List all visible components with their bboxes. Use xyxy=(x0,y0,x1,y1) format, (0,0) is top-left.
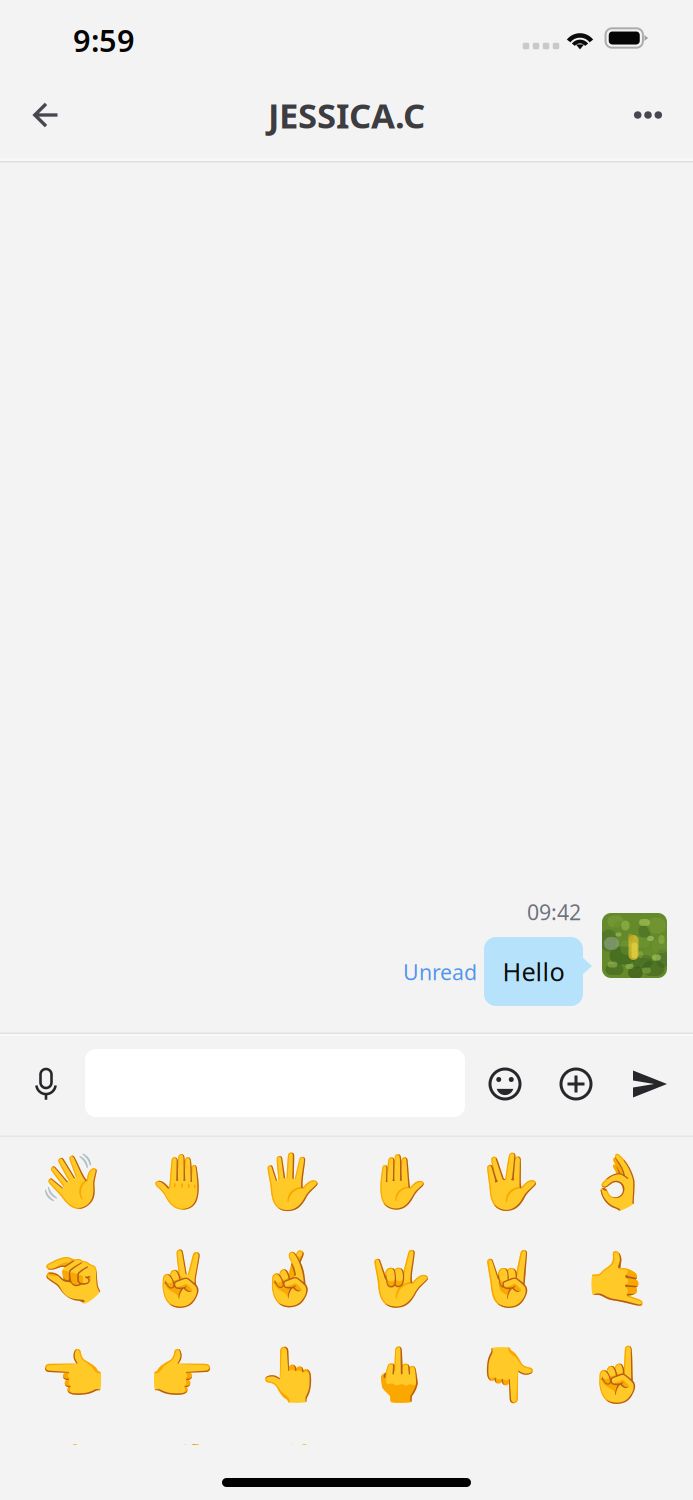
button[interactable]: Emoji xyxy=(17,1331,126,1419)
button[interactable]: Emoji xyxy=(345,1234,454,1322)
button[interactable]: Emoji xyxy=(126,1331,235,1419)
button[interactable]: Emoji xyxy=(454,1138,563,1226)
staticText: ✋ xyxy=(366,1151,432,1212)
button[interactable]: More options xyxy=(617,84,679,146)
staticText: 🤟 xyxy=(366,1248,432,1309)
button[interactable]: Voice message xyxy=(15,1050,77,1116)
staticText: 09:42 xyxy=(527,898,581,926)
staticText: 🖕 xyxy=(366,1344,432,1405)
staticText: 👆 xyxy=(257,1344,323,1405)
button[interactable]: Emoji xyxy=(126,1234,235,1322)
staticText: ✊ xyxy=(257,1441,323,1500)
button[interactable]: Emoji xyxy=(563,1138,672,1226)
staticText: 🖐 xyxy=(257,1151,323,1212)
button[interactable]: Send xyxy=(628,1053,672,1115)
staticText: 🖖 xyxy=(475,1151,541,1212)
button[interactable]: Emoji xyxy=(454,1331,563,1419)
button[interactable]: Emoji xyxy=(235,1138,344,1226)
staticText: 👇 xyxy=(475,1344,541,1405)
button[interactable]: Emoji xyxy=(480,1052,530,1116)
button[interactable]: Attach xyxy=(551,1052,601,1116)
button[interactable]: Emoji xyxy=(345,1427,454,1500)
button[interactable]: Emoji xyxy=(235,1331,344,1419)
button[interactable]: Emoji xyxy=(126,1138,235,1226)
staticText: 👎 xyxy=(148,1441,214,1500)
staticText: 👍 xyxy=(38,1441,104,1500)
button[interactable]: Emoji xyxy=(345,1331,454,1419)
staticText: ☝ xyxy=(584,1344,650,1405)
button[interactable]: Emoji xyxy=(235,1427,344,1500)
staticText: 🤏 xyxy=(38,1248,104,1309)
button[interactable]: Emoji xyxy=(563,1331,672,1419)
button[interactable]: Emoji xyxy=(235,1234,344,1322)
button[interactable]: Emoji xyxy=(563,1234,672,1322)
staticText: 🤙 xyxy=(584,1248,650,1309)
staticText: 🤚 xyxy=(148,1151,214,1212)
staticText: 👋 xyxy=(38,1151,104,1212)
button[interactable]: Emoji xyxy=(126,1427,235,1500)
staticText: JESSICA.C xyxy=(268,92,425,138)
staticText: 🤞 xyxy=(257,1248,323,1309)
staticText: 9:59 xyxy=(73,20,135,60)
staticText: 👉 xyxy=(148,1344,214,1405)
staticText: 👈 xyxy=(38,1344,104,1405)
button[interactable]: Emoji xyxy=(345,1138,454,1226)
button[interactable]: Emoji xyxy=(17,1234,126,1322)
staticText: Unread xyxy=(403,958,477,986)
button[interactable]: Back xyxy=(15,84,77,146)
staticText: 🤘 xyxy=(475,1248,541,1309)
button[interactable]: Emoji xyxy=(17,1427,126,1500)
staticText: 👊 xyxy=(366,1441,432,1500)
staticText: Hello xyxy=(502,955,564,988)
button[interactable]: Emoji xyxy=(454,1427,563,1500)
staticText: 👌 xyxy=(584,1151,650,1212)
staticText: ✌ xyxy=(148,1248,214,1309)
button[interactable]: Emoji xyxy=(454,1234,563,1322)
button[interactable]: Emoji xyxy=(17,1138,126,1226)
